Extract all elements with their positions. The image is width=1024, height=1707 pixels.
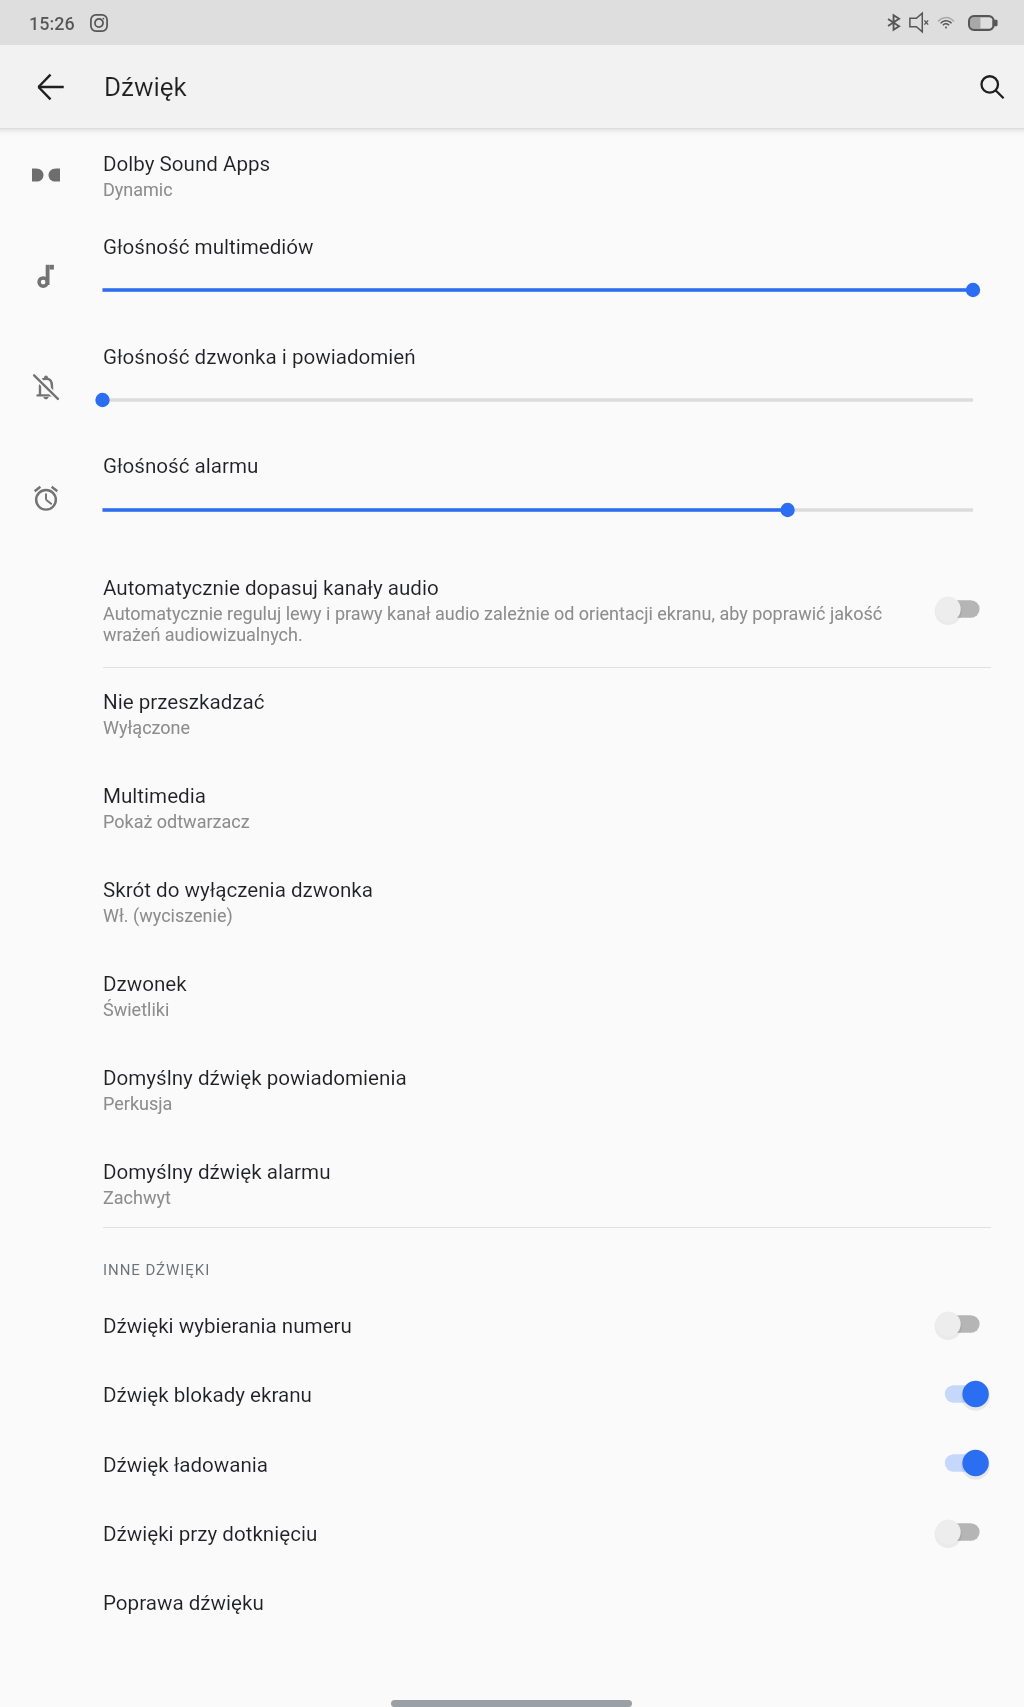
staticText: Automatycznie reguluj lewy i prawy kanał… [103,603,887,645]
staticText: Pokaż odtwarzacz [103,811,250,832]
button[interactable]: Domyślny dźwięk powiadomienia [0,1050,1024,1130]
button[interactable]: Automatycznie dopasuj kanały audio [0,558,1024,658]
staticText: Multimedia [103,784,206,808]
staticText: Dynamic [103,179,173,200]
staticText: Perkusja [103,1093,173,1114]
button[interactable]: Dzwonek [0,956,1024,1036]
button[interactable]: Back [22,58,79,115]
button[interactable]: Off [934,1302,996,1346]
staticText: Automatycznie dopasuj kanały audio [103,576,439,600]
staticText: Wł. (wyciszenie) [103,905,233,926]
staticText: Dźwięk ładowania [103,1453,269,1477]
staticText: Domyślny dźwięk alarmu [103,1160,331,1184]
button[interactable]: Dźwięk ładowania [0,1437,1024,1506]
staticText: 15:26 [29,13,75,34]
button[interactable]: On [934,1441,996,1485]
staticText: Nie przeszkadzać [103,690,265,714]
button[interactable]: Nie przeszkadzać [0,674,1024,754]
staticText: INNE DŹWIĘKI [103,1261,211,1279]
staticText: Głośność dzwonka i powiadomień [103,345,416,369]
staticText: Dźwięk [104,72,187,102]
button[interactable]: Skrót do wyłączenia dzwonka [0,862,1024,942]
button[interactable]: Off [934,1510,996,1554]
staticText: Domyślny dźwięk powiadomienia [103,1066,407,1090]
button[interactable]: Dźwięk blokady ekranu [0,1367,1024,1436]
button[interactable] [0,329,1024,429]
button[interactable]: Dolby Sound Apps [0,133,1024,210]
button[interactable]: Domyślny dźwięk alarmu [0,1144,1024,1224]
button[interactable] [0,219,1024,319]
staticText: Głośność multimediów [103,235,314,259]
staticText: Wyłączone [103,717,191,738]
staticText: Dolby Sound Apps [103,152,271,176]
staticText: Poprawa dźwięku [103,1591,264,1615]
button[interactable]: Multimedia [0,768,1024,848]
button[interactable] [0,438,1024,538]
button[interactable]: On [934,1372,996,1416]
staticText: Zachwyt [103,1187,171,1208]
staticText: Świetliki [103,999,170,1020]
button[interactable]: Search [962,58,1019,115]
staticText: Dzwonek [103,972,187,996]
button[interactable]: Dźwięki wybierania numeru [0,1298,1024,1367]
staticText: Dźwięki przy dotknięciu [103,1522,318,1546]
button[interactable]: Off [934,587,996,631]
staticText: Dźwięk blokady ekranu [103,1383,312,1407]
button[interactable]: Poprawa dźwięku [0,1575,1024,1644]
staticText: Głośność alarmu [103,454,259,478]
button[interactable]: Dźwięki przy dotknięciu [0,1506,1024,1575]
staticText: Skrót do wyłączenia dzwonka [103,878,374,902]
staticText: Dźwięki wybierania numeru [103,1314,352,1338]
